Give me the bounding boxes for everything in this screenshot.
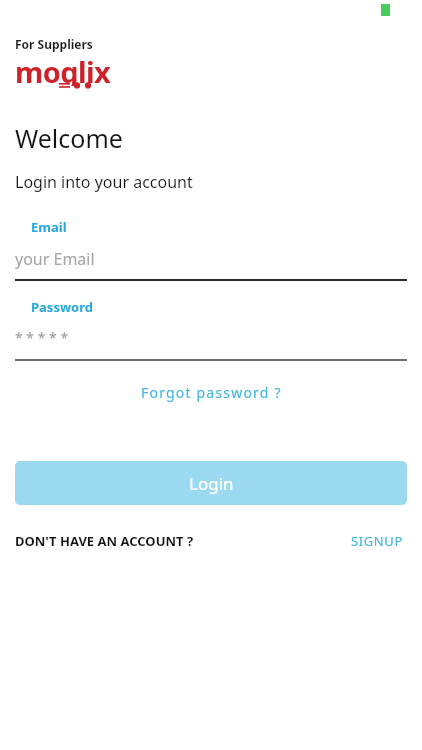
- staticText: Email: [31, 218, 67, 236]
- staticText: Welcome: [15, 121, 123, 155]
- button[interactable]: your Email: [15, 248, 407, 270]
- button[interactable]: Forgot password ?: [133, 379, 290, 406]
- staticText: Password: [31, 298, 93, 316]
- staticText: Login into your account: [15, 171, 193, 193]
- button[interactable]: * * * * *: [15, 328, 407, 347]
- button[interactable]: Login: [15, 461, 407, 505]
- staticText: your Email: [15, 248, 95, 270]
- button[interactable]: SIGNUP: [347, 528, 407, 554]
- other: moglix logo: [15, 55, 115, 89]
- staticText: DON'T HAVE AN ACCOUNT ?: [15, 532, 194, 550]
- staticText: Login: [189, 472, 234, 495]
- staticText: For Suppliers: [15, 36, 93, 52]
- staticText: moglix: [15, 52, 111, 86]
- staticText: * * * * *: [15, 328, 69, 347]
